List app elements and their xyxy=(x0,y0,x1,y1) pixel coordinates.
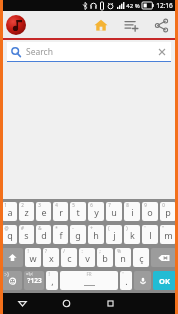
button[interactable]: Home xyxy=(89,13,113,37)
staticText: m xyxy=(164,229,173,241)
staticText: ; xyxy=(99,248,101,254)
button[interactable]: - xyxy=(70,225,86,244)
button[interactable]: Shift xyxy=(2,248,23,267)
button[interactable]: ! xyxy=(46,271,58,290)
button[interactable]: Symbols xyxy=(24,271,44,290)
button[interactable]: 3 xyxy=(36,202,51,221)
button[interactable]: Home xyxy=(44,293,88,314)
button[interactable]: Recents xyxy=(88,293,133,314)
staticText: e xyxy=(41,206,47,218)
staticText: / xyxy=(63,248,65,254)
button[interactable]: & xyxy=(36,225,51,244)
staticText: f xyxy=(59,229,63,241)
staticText: =\< xyxy=(26,271,33,277)
button[interactable]: 8 xyxy=(124,202,140,221)
button[interactable]: Share xyxy=(149,13,173,37)
staticText: # xyxy=(21,225,24,231)
staticText: s xyxy=(24,229,29,241)
staticText: 3 xyxy=(38,202,41,208)
staticText: ç xyxy=(139,252,144,264)
staticText: " xyxy=(162,225,164,231)
staticText: 7 xyxy=(108,202,111,208)
button[interactable]: 4 xyxy=(53,202,68,221)
button[interactable]: : xyxy=(79,248,95,267)
button[interactable]: ! xyxy=(25,248,41,267)
button[interactable]: 0 xyxy=(160,202,176,221)
staticText: z xyxy=(24,206,29,218)
staticText: j xyxy=(113,229,116,241)
button[interactable]: 9 xyxy=(142,202,158,221)
staticText: * xyxy=(55,225,58,231)
staticText: g xyxy=(75,229,81,241)
staticText: + xyxy=(90,225,93,231)
staticText: Search xyxy=(26,46,53,58)
staticText: . xyxy=(125,275,128,287)
button[interactable]: ) xyxy=(124,225,140,244)
staticText: 8 xyxy=(126,202,129,208)
staticText: 5 xyxy=(72,202,75,208)
staticText: i xyxy=(131,206,134,218)
button[interactable]: Back xyxy=(0,293,44,314)
button[interactable]: ? xyxy=(43,248,59,267)
staticText: ) xyxy=(126,225,128,231)
staticText: ? xyxy=(45,248,47,254)
staticText: t xyxy=(76,206,80,218)
staticText: v xyxy=(85,252,90,264)
staticText: n xyxy=(120,252,126,264)
button[interactable]: ; xyxy=(97,248,113,267)
staticText: , xyxy=(51,275,54,287)
staticText: & xyxy=(38,225,42,231)
button[interactable]: / xyxy=(61,248,77,267)
staticText: ! xyxy=(48,271,50,277)
staticText: - xyxy=(72,225,74,231)
staticText: 12:16 xyxy=(156,1,173,10)
button[interactable]: @ xyxy=(2,225,17,244)
staticText: y xyxy=(94,206,99,218)
staticText: :-) xyxy=(4,271,9,277)
button[interactable]: 6 xyxy=(88,202,104,221)
button[interactable]: Clear search xyxy=(157,47,167,57)
staticText: h xyxy=(93,229,99,241)
button[interactable]: 2 xyxy=(19,202,34,221)
button[interactable]: App logo xyxy=(5,14,27,36)
staticText: x xyxy=(49,252,54,264)
button[interactable]: OK xyxy=(153,271,176,290)
button[interactable]: 5 xyxy=(70,202,86,221)
button[interactable]: % xyxy=(115,248,131,267)
button[interactable]: ç xyxy=(133,248,149,267)
button[interactable]: ' xyxy=(120,271,132,290)
staticText: 2 xyxy=(21,202,24,208)
button[interactable]: Space xyxy=(60,271,118,290)
button[interactable]: " xyxy=(160,225,176,244)
staticText: u xyxy=(111,206,117,218)
button[interactable]: # xyxy=(19,225,34,244)
staticText: FR xyxy=(86,271,92,277)
staticText: % xyxy=(117,248,121,254)
staticText: 6 xyxy=(90,202,93,208)
staticText: ( xyxy=(108,225,110,231)
staticText: ' xyxy=(144,225,146,231)
staticText: OK xyxy=(159,276,170,286)
staticText: c xyxy=(67,252,72,264)
staticText: ?123 xyxy=(27,276,42,285)
button[interactable]: 7 xyxy=(106,202,122,221)
staticText: @ xyxy=(4,225,9,231)
button[interactable]: Add to playlist xyxy=(119,13,143,37)
button[interactable]: Voice input xyxy=(134,271,151,290)
staticText: k xyxy=(130,229,135,241)
staticText: 0 xyxy=(162,202,165,208)
staticText: : xyxy=(81,248,83,254)
staticText: p xyxy=(165,206,171,218)
button[interactable]: + xyxy=(88,225,104,244)
button[interactable]: Emoji xyxy=(2,271,22,290)
staticText: l xyxy=(149,229,152,241)
button[interactable]: Backspace xyxy=(151,248,176,267)
button[interactable]: 1 xyxy=(2,202,17,221)
staticText: d xyxy=(41,229,47,241)
button[interactable]: ' xyxy=(142,225,158,244)
button[interactable]: Search xyxy=(7,42,171,61)
button[interactable]: * xyxy=(53,225,68,244)
button[interactable]: ( xyxy=(106,225,122,244)
staticText: 42 % xyxy=(126,2,140,10)
staticText: ! xyxy=(27,248,29,254)
